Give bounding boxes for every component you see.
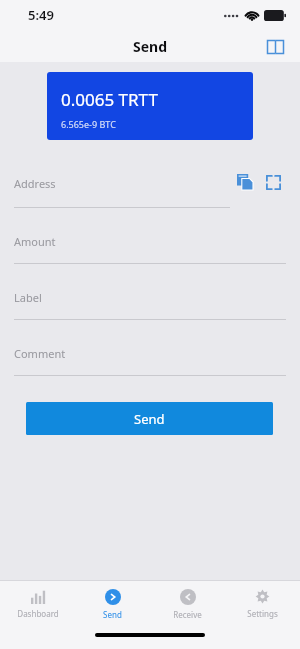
staticText: Comment — [14, 346, 66, 361]
button[interactable]: Scan QR code — [262, 171, 284, 193]
staticText: Label — [14, 290, 42, 305]
button[interactable]: Receive — [150, 589, 225, 620]
button[interactable]: Amount — [0, 234, 300, 264]
button[interactable]: Address book — [260, 31, 290, 61]
button[interactable]: Dashboard — [0, 590, 75, 619]
button[interactable]: Label — [0, 290, 300, 320]
button[interactable]: Settings — [225, 589, 300, 619]
staticText: Settings — [247, 608, 278, 619]
staticText: Send — [133, 37, 168, 56]
staticText: 6.565e-9 BTC — [61, 118, 116, 130]
staticText: Address — [14, 176, 56, 191]
staticText: 0.0065 TRTT — [61, 88, 158, 111]
button[interactable]: Send — [26, 402, 273, 435]
staticText: 5:49 — [28, 6, 54, 24]
button[interactable]: Comment — [0, 346, 300, 376]
staticText: Amount — [14, 234, 56, 249]
staticText: Send — [134, 410, 165, 428]
staticText: Dashboard — [17, 608, 59, 619]
staticText: Send — [103, 609, 122, 620]
button[interactable]: 0.0065 TRTT — [47, 72, 253, 140]
staticText: Receive — [173, 609, 202, 620]
button[interactable]: Send — [75, 589, 150, 620]
button[interactable]: Paste address — [234, 171, 256, 193]
